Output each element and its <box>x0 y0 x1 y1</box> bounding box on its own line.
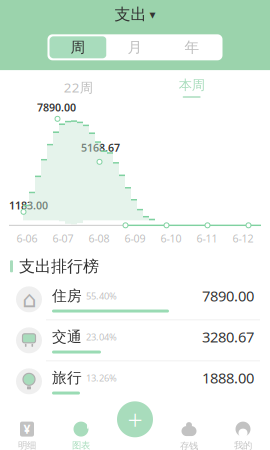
staticText: 3280.67 <box>202 327 254 347</box>
button[interactable]: 图表 <box>54 417 108 450</box>
staticText: 13.26% <box>86 372 117 384</box>
staticText: 6-07 <box>52 231 73 245</box>
staticText: ▾ <box>149 8 155 21</box>
staticText: 1183.00 <box>9 198 48 212</box>
button[interactable]: 存钱 <box>162 417 216 450</box>
button[interactable]: 交通 <box>0 320 270 361</box>
staticText: 旅行 <box>52 369 82 387</box>
staticText: 周 <box>70 38 85 56</box>
staticText: 我的 <box>234 440 252 450</box>
staticText: 年 <box>184 38 199 56</box>
staticText: 5168.67 <box>81 140 120 155</box>
staticText: 月 <box>127 38 142 56</box>
button[interactable]: 月 <box>106 36 163 58</box>
button[interactable]: 本周 <box>157 75 227 99</box>
staticText: 明细 <box>18 440 36 450</box>
staticText: 6-06 <box>16 231 37 245</box>
staticText: ⌂ <box>22 286 36 312</box>
staticText: 支出排行榜 <box>19 256 99 276</box>
button[interactable]: ¥ <box>0 417 54 450</box>
staticText: 本周 <box>179 77 205 93</box>
button[interactable]: 我的 <box>216 417 270 450</box>
staticText: ¥ <box>23 421 30 437</box>
staticText: 6-10 <box>160 231 181 245</box>
staticText: 交通 <box>52 328 82 346</box>
staticText: 存钱 <box>180 440 198 450</box>
staticText: 1888.00 <box>202 368 254 388</box>
button[interactable]: 22周 <box>43 78 113 96</box>
staticText: 6-12 <box>232 231 253 245</box>
staticText: + <box>127 402 142 437</box>
staticText: 6-11 <box>196 231 217 245</box>
staticText: 6-08 <box>88 231 109 245</box>
staticText: 住房 <box>52 287 82 305</box>
button[interactable]: ⌂ <box>0 279 270 320</box>
button[interactable]: 周 <box>49 36 106 58</box>
staticText: 55.40% <box>86 290 117 302</box>
staticText: 6-09 <box>124 231 145 245</box>
button[interactable]: 旅行 <box>0 361 270 401</box>
staticText: 支出 <box>114 5 146 24</box>
staticText: 7890.00 <box>37 100 76 114</box>
staticText: 7890.00 <box>202 286 254 306</box>
staticText: 22周 <box>64 78 93 96</box>
button[interactable]: 支出 <box>106 3 163 26</box>
button[interactable]: 年 <box>163 36 220 58</box>
staticText: 图表 <box>72 440 90 450</box>
staticText: 23.04% <box>86 331 117 343</box>
